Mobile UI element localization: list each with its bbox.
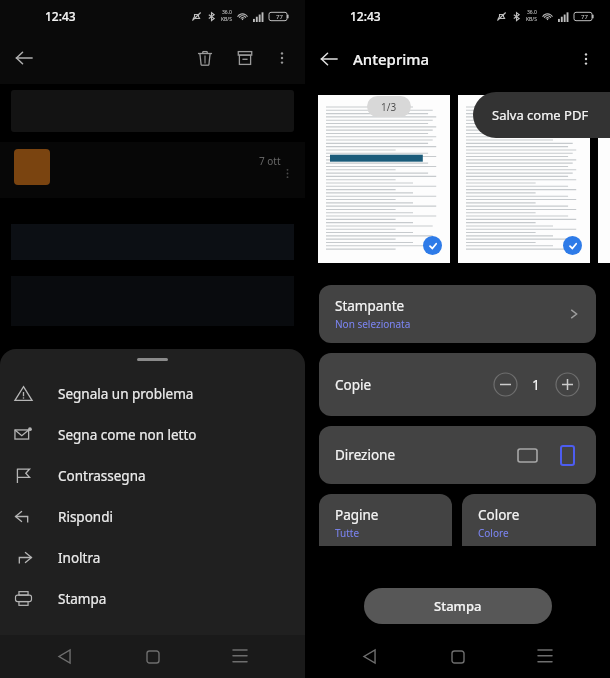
button[interactable]: Portrait xyxy=(552,440,582,470)
button[interactable]: Stampa xyxy=(0,578,305,619)
staticText: Colore xyxy=(478,506,520,524)
button[interactable]: Stampante xyxy=(319,285,596,343)
staticText: 1 xyxy=(532,375,541,394)
staticText: 1/3 xyxy=(381,100,397,114)
staticText: 77 xyxy=(581,13,588,21)
button[interactable]: Recent apps xyxy=(218,635,262,678)
button[interactable]: Inoltra xyxy=(0,537,305,578)
staticText: 36.0 xyxy=(527,9,537,16)
button[interactable] xyxy=(458,95,590,263)
staticText: 77 xyxy=(276,13,283,21)
staticText: Segnala un problema xyxy=(58,385,194,403)
staticText: Anteprima xyxy=(353,49,430,69)
staticText: Rispondi xyxy=(58,508,113,526)
button[interactable]: Back xyxy=(0,34,48,82)
button[interactable]: Stampa xyxy=(364,588,552,624)
button[interactable]: Back xyxy=(348,635,392,678)
staticText: Colore xyxy=(478,526,509,540)
button[interactable]: More options xyxy=(566,39,606,79)
staticText: Direzione xyxy=(335,446,396,464)
button[interactable]: Home xyxy=(436,635,480,678)
staticText: Stampante xyxy=(335,297,405,315)
staticText: 7 ott xyxy=(259,154,281,168)
staticText: Copie xyxy=(335,376,372,394)
staticText: Tutte xyxy=(335,526,360,540)
button[interactable]: Rispondi xyxy=(0,496,305,537)
staticText: 12:43 xyxy=(45,8,76,24)
button[interactable] xyxy=(318,95,450,263)
staticText: Pagine xyxy=(335,506,379,524)
button[interactable]: Segna come non letto xyxy=(0,414,305,455)
button[interactable]: Archive xyxy=(225,38,265,78)
button[interactable]: Back xyxy=(305,35,353,83)
button[interactable]: Pagine xyxy=(319,494,452,546)
button[interactable]: Home xyxy=(131,635,175,678)
button[interactable]: More options xyxy=(265,41,299,75)
staticText: KB/S xyxy=(221,16,232,23)
button[interactable]: Recent apps xyxy=(523,635,567,678)
staticText: Segna come non letto xyxy=(58,426,197,444)
button[interactable]: Copie xyxy=(319,353,596,416)
button[interactable]: Salva come PDF xyxy=(473,92,610,138)
button[interactable]: Landscape xyxy=(512,440,542,470)
staticText: 12:43 xyxy=(350,8,381,24)
button[interactable]: Delete xyxy=(185,38,225,78)
button[interactable]: Contrassegna xyxy=(0,455,305,496)
button[interactable]: Direzione xyxy=(319,426,596,484)
staticText: Contrassegna xyxy=(58,467,146,485)
staticText: KB/S xyxy=(526,16,537,23)
staticText: Non selezionata xyxy=(335,317,411,331)
staticText: Inoltra xyxy=(58,549,101,567)
staticText: 36.0 xyxy=(222,9,232,16)
staticText: Stampa xyxy=(58,590,107,608)
button[interactable]: Segnala un problema xyxy=(0,373,305,414)
button[interactable]: Back xyxy=(43,635,87,678)
button[interactable]: Increase copies xyxy=(555,372,580,397)
staticText: Salva come PDF xyxy=(492,106,589,124)
staticText: Stampa xyxy=(434,597,482,615)
button[interactable]: Decrease copies xyxy=(493,372,518,397)
button[interactable] xyxy=(598,95,610,263)
button[interactable]: Colore xyxy=(462,494,596,546)
